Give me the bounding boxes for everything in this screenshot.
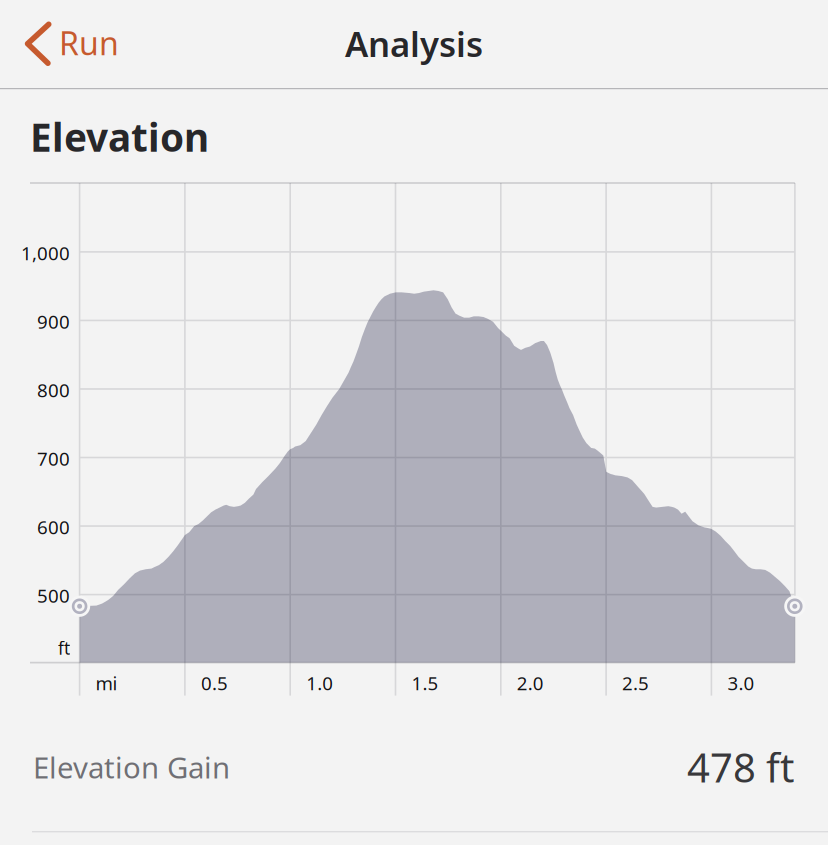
staticText: 900 bbox=[37, 309, 70, 334]
staticText: 0.5 bbox=[201, 671, 228, 695]
staticText: 700 bbox=[37, 446, 70, 471]
staticText: 1.0 bbox=[306, 671, 333, 695]
staticText: 600 bbox=[37, 515, 70, 539]
staticText: 1.5 bbox=[411, 671, 438, 695]
staticText: Elevation Gain bbox=[33, 747, 230, 786]
staticText: 3.0 bbox=[727, 671, 754, 695]
staticText: mi bbox=[96, 671, 118, 695]
staticText: 500 bbox=[37, 583, 70, 608]
button[interactable]: Run bbox=[0, 0, 130, 88]
staticText: 2.0 bbox=[517, 671, 544, 695]
staticText: Analysis bbox=[345, 21, 483, 67]
staticText: 1,000 bbox=[21, 240, 70, 265]
staticText: Elevation bbox=[30, 111, 209, 162]
staticText: Run bbox=[59, 21, 119, 64]
staticText: 478 ft bbox=[687, 740, 794, 793]
staticText: 800 bbox=[37, 378, 70, 402]
staticText: 2.5 bbox=[622, 671, 649, 695]
staticText: ft bbox=[58, 636, 70, 659]
